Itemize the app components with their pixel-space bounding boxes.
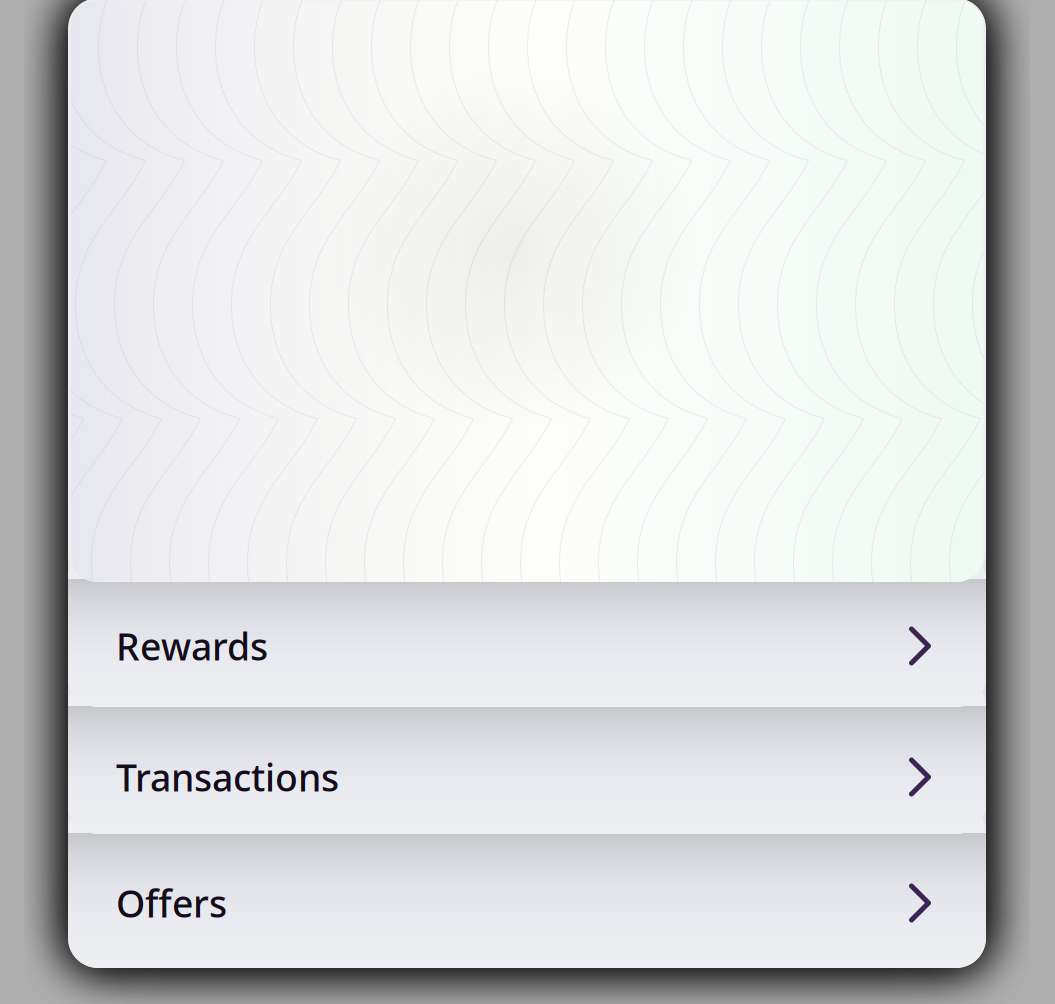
staticText: Transactions [116,752,339,802]
button[interactable]: Offers [68,803,986,968]
button[interactable]: Transactions [68,676,986,834]
button[interactable]: Rewards [68,549,986,707]
staticText: Rewards [116,621,268,671]
staticText: Offers [116,878,227,928]
